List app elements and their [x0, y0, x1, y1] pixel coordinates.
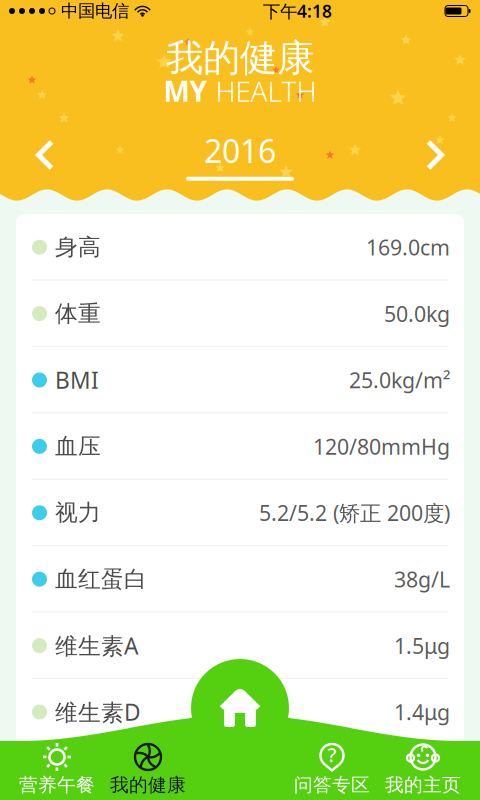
button[interactable]: 视力 — [16, 480, 464, 546]
button[interactable]: 维生素D — [16, 679, 464, 745]
staticText: 我的健康 — [110, 773, 186, 796]
staticText: 营养午餐 — [19, 773, 95, 796]
button[interactable]: Home — [191, 659, 289, 757]
staticText: ? — [327, 741, 336, 768]
button[interactable]: 维生素A — [16, 612, 464, 679]
staticText: 血压 — [55, 432, 101, 460]
button[interactable]: Next year — [406, 129, 464, 181]
button[interactable]: 我的健康 — [101, 735, 195, 797]
staticText: 38g/L — [394, 565, 450, 593]
button[interactable]: BMI — [16, 347, 464, 413]
staticText: 5.2/5.2 (矫正 200度) — [259, 499, 450, 527]
staticText: 50.0kg — [384, 299, 450, 328]
staticText: BMI — [55, 365, 99, 395]
staticText: 身高 — [55, 233, 101, 261]
staticText: 中国电信 — [61, 0, 129, 22]
staticText: 1.5μg — [394, 631, 450, 660]
staticText: 维生素A — [55, 630, 138, 661]
staticText: 我的主页 — [385, 773, 461, 796]
button[interactable]: 我的主页 — [376, 735, 470, 797]
button[interactable]: 身高 — [16, 214, 464, 280]
staticText: 1.4μg — [394, 698, 450, 726]
button[interactable]: ? — [285, 735, 379, 797]
staticText: 维生素D — [55, 697, 141, 727]
button[interactable]: 营养午餐 — [10, 735, 104, 797]
staticText: 我的健康 — [166, 35, 314, 81]
staticText: 血红蛋白 — [55, 565, 147, 593]
button[interactable]: 体重 — [16, 280, 464, 347]
staticText: 120/80mmHg — [313, 432, 450, 460]
staticText: 169.0cm — [366, 233, 450, 261]
button[interactable]: 2016 — [170, 129, 310, 181]
staticText: 视力 — [55, 499, 101, 527]
button[interactable]: Previous year — [16, 129, 74, 181]
staticText: 2016 — [204, 129, 276, 172]
staticText: 下午4:18 — [263, 0, 332, 22]
staticText: 问答专区 — [294, 773, 370, 796]
button[interactable]: 血红蛋白 — [16, 546, 464, 612]
staticText: MY — [163, 72, 207, 110]
staticText: 体重 — [55, 300, 101, 327]
staticText: 25.0kg/m² — [349, 366, 450, 394]
staticText: HEALTH — [215, 72, 316, 110]
button[interactable]: 血压 — [16, 413, 464, 480]
